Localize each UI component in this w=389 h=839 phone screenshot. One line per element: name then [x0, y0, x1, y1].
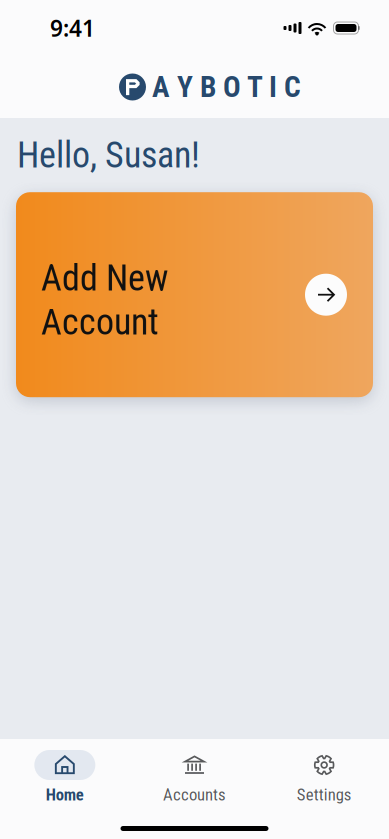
button[interactable]: Add New [16, 192, 373, 397]
button[interactable]: Settings [259, 750, 389, 804]
staticText: Hello, Susan! [17, 134, 200, 176]
button[interactable]: Home [0, 750, 130, 804]
staticText: Home [46, 785, 84, 804]
staticText: Settings [297, 785, 352, 804]
staticText: Account [41, 301, 159, 343]
staticText: 9:41 [50, 13, 95, 43]
staticText: Add New [41, 257, 168, 299]
button[interactable]: Accounts [130, 750, 259, 804]
staticText: Accounts [163, 785, 226, 804]
staticText: A Y B O T I C [152, 70, 301, 104]
